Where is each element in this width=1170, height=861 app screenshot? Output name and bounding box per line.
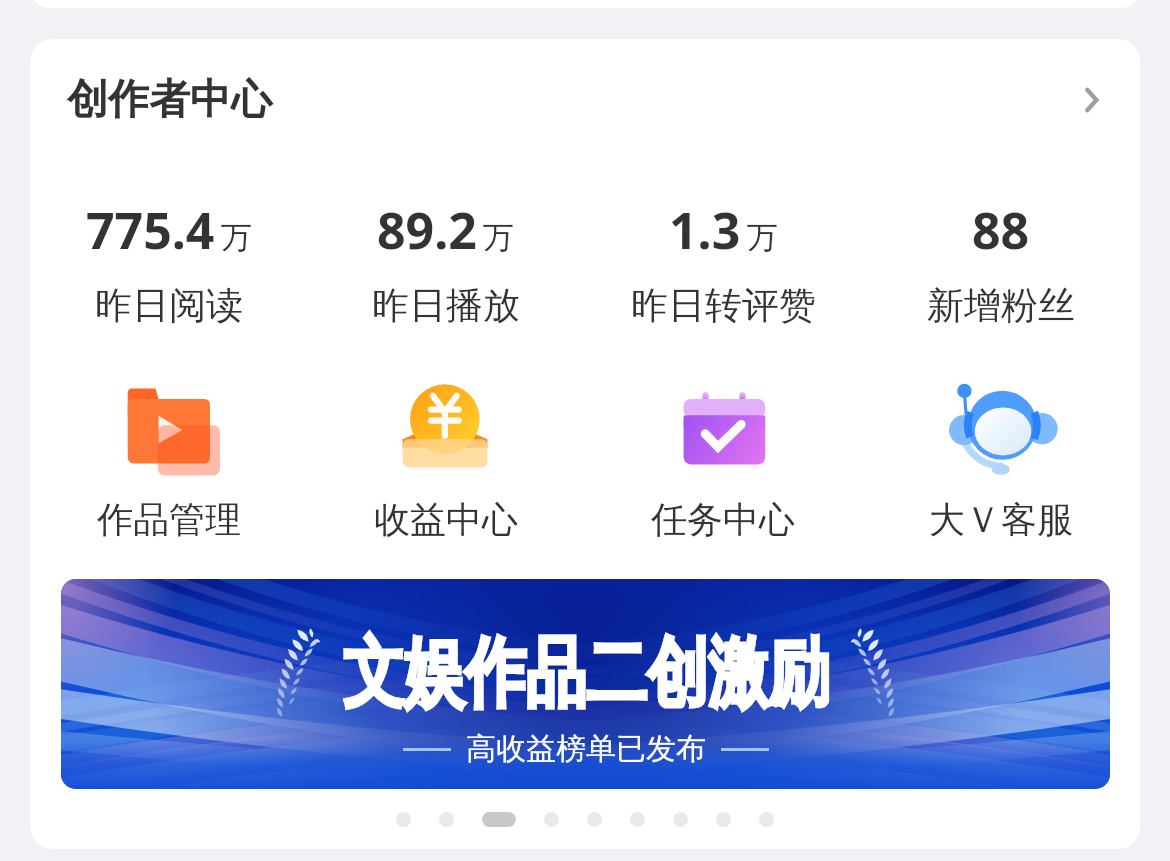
staticText: 88 xyxy=(972,196,1030,264)
staticText: 万 xyxy=(747,218,778,257)
staticText: 775.4 xyxy=(86,196,215,264)
staticText: 昨日转评赞 xyxy=(631,282,816,329)
button[interactable]: 作品管理 xyxy=(30,375,307,542)
staticText: 大Ｖ客服 xyxy=(929,497,1073,542)
staticText: 创作者中心 xyxy=(67,74,272,126)
staticText: 高收益榜单已发布 xyxy=(466,730,706,768)
staticText: 任务中心 xyxy=(651,497,795,542)
button[interactable]: 收益中心 xyxy=(307,375,584,542)
button[interactable]: 89.2 xyxy=(307,196,584,329)
button[interactable]: 文娱作品二创激励 xyxy=(61,579,1110,789)
staticText: 万 xyxy=(221,218,252,257)
button[interactable]: 创作者中心 xyxy=(30,39,1140,161)
staticText: 万 xyxy=(483,218,514,257)
staticText: 收益中心 xyxy=(374,497,518,542)
button[interactable]: 任务中心 xyxy=(584,375,862,542)
staticText: 新增粉丝 xyxy=(927,282,1075,329)
staticText: 89.2 xyxy=(377,196,477,264)
staticText: 作品管理 xyxy=(97,497,241,542)
staticText: 昨日播放 xyxy=(372,282,520,329)
button[interactable]: 1.3 xyxy=(584,196,862,329)
button[interactable]: 775.4 xyxy=(30,196,307,329)
button[interactable]: 88 xyxy=(862,196,1140,329)
staticText: 1.3 xyxy=(669,196,741,264)
staticText: 文娱作品二创激励 xyxy=(343,626,829,718)
other: 进入创作者中心 xyxy=(1075,83,1109,117)
button[interactable]: 大Ｖ客服 xyxy=(862,375,1140,542)
staticText: 昨日阅读 xyxy=(95,282,243,329)
